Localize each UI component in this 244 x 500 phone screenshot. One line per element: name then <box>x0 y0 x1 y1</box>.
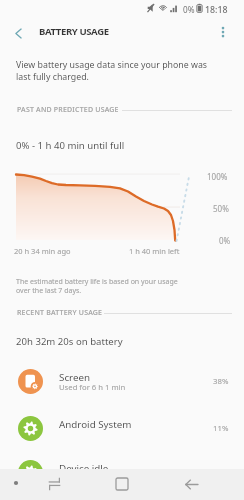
staticText: PAST AND PREDICTED USAGE <box>17 105 119 115</box>
staticText: 0% <box>219 235 231 246</box>
button[interactable]: Back <box>178 471 204 497</box>
staticText: Device idle <box>59 462 109 475</box>
button[interactable]: Screen <box>0 357 244 405</box>
staticText: View battery usage data since your phone… <box>16 59 208 83</box>
staticText: Used for 6 h 1 min <box>59 382 126 392</box>
staticText: 0% - 1 h 40 min until full <box>16 139 125 152</box>
staticText: Android System <box>59 418 132 431</box>
staticText: 50% <box>213 203 229 214</box>
button[interactable]: Device idle <box>0 448 244 496</box>
staticText: 11% <box>213 423 229 434</box>
staticText: 38% <box>213 376 229 387</box>
button[interactable]: Assistant <box>6 473 26 493</box>
button[interactable]: Android System <box>0 404 244 452</box>
staticText: 100% <box>207 171 228 182</box>
button[interactable]: More options <box>209 18 237 46</box>
button[interactable]: Recent apps <box>41 471 67 497</box>
staticText: BATTERY USAGE <box>39 25 109 38</box>
staticText: The estimated battery life is based on y… <box>16 277 178 295</box>
staticText: 1 h 40 min left <box>129 246 180 256</box>
button[interactable]: Navigate up <box>4 19 32 47</box>
button[interactable]: Home <box>109 471 135 497</box>
staticText: 18:18 <box>205 4 228 16</box>
staticText: 20 h 34 min ago <box>14 246 71 256</box>
staticText: Screen <box>59 371 91 384</box>
staticText: 0% <box>183 4 195 15</box>
staticText: RECENT BATTERY USAGE <box>17 308 103 318</box>
staticText: 20h 32m 20s on battery <box>16 335 123 348</box>
